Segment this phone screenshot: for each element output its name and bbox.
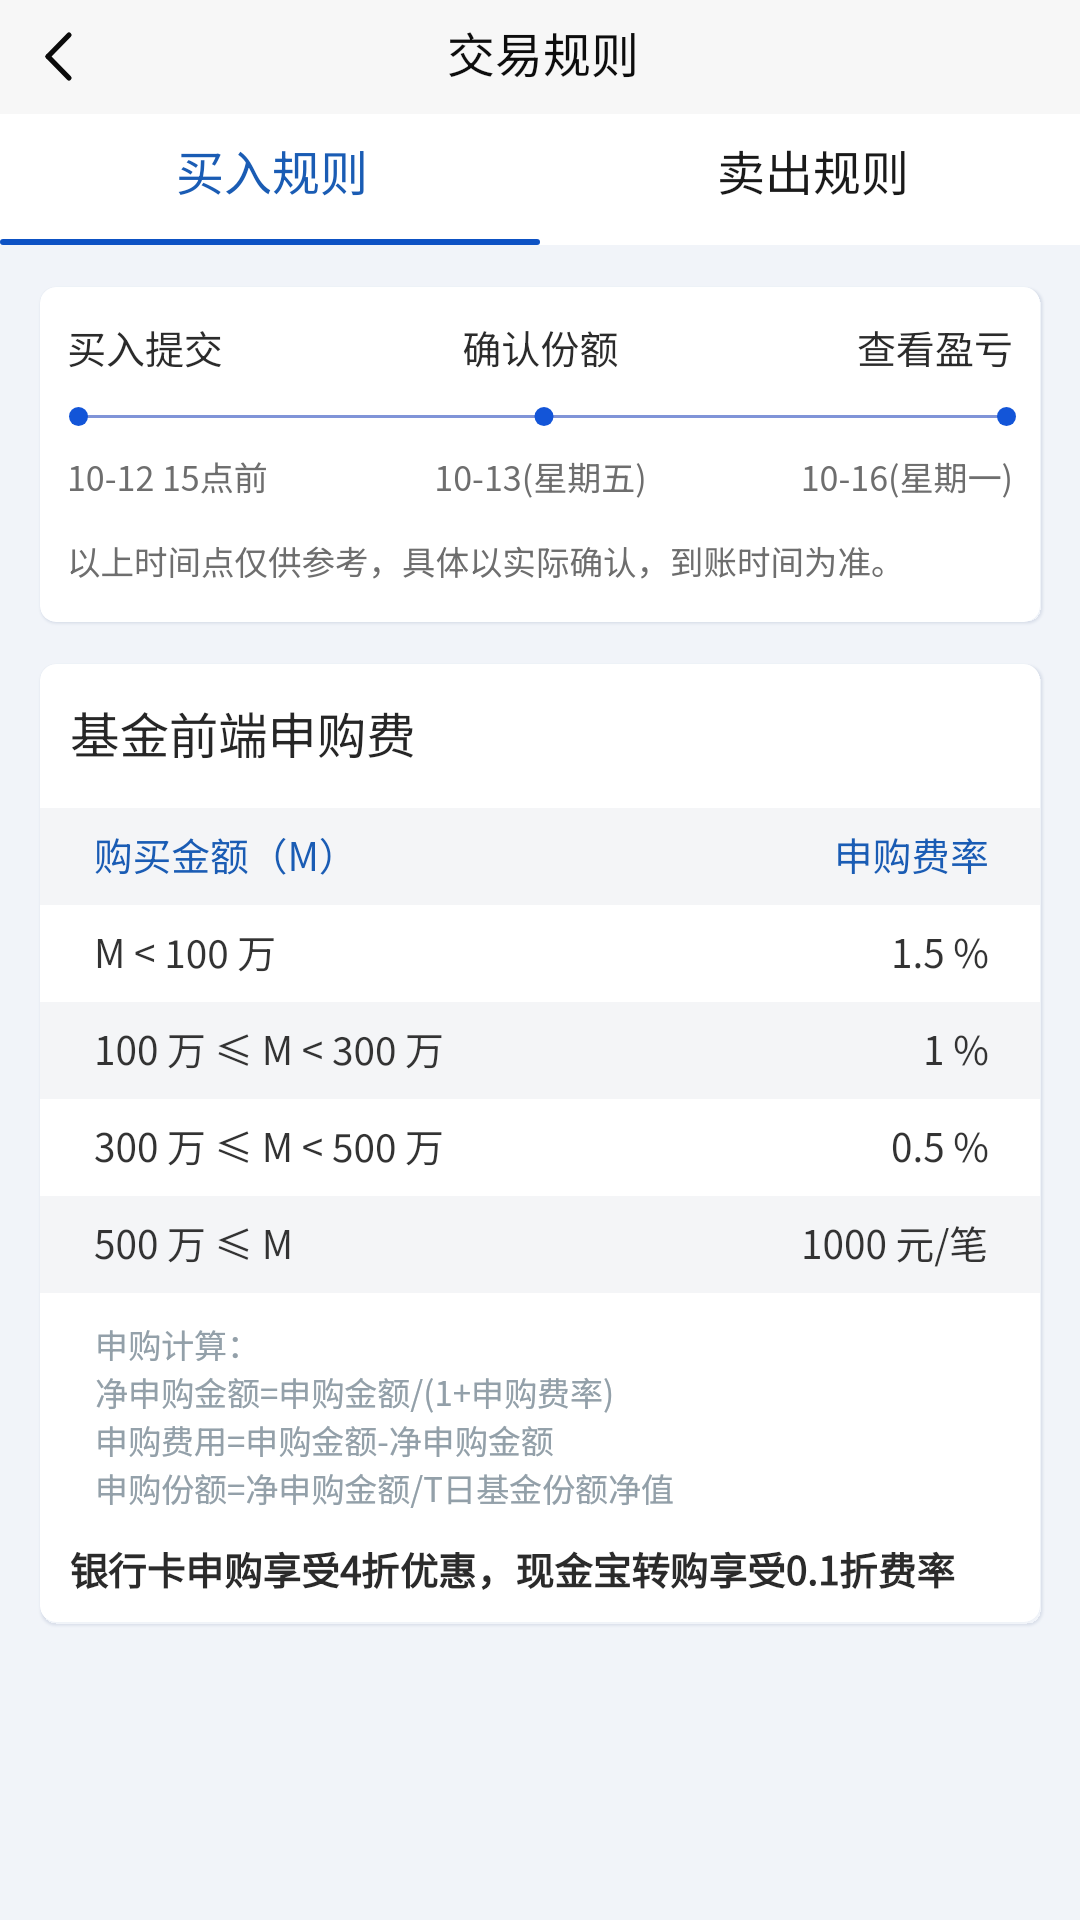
button[interactable]: M < 100 万	[40, 905, 1040, 1002]
staticText: 净申购金额=申购金额/(1+申购费率)	[95, 1368, 615, 1416]
staticText: 买入规则	[176, 135, 369, 205]
staticText: 10-13(星期五)	[383, 452, 698, 501]
staticText: 10-12 15点前	[67, 452, 383, 501]
staticText: 基金前端申购费	[70, 697, 416, 769]
staticText: 申购计算：	[95, 1320, 260, 1368]
staticText: 申购份额=净申购金额/T日基金份额净值	[95, 1464, 675, 1512]
staticText: 查看盈亏	[698, 319, 1013, 375]
staticText: 10-16(星期一)	[698, 452, 1013, 501]
button[interactable]: 300 万 ≤ M < 500 万	[40, 1099, 1040, 1196]
staticText: 300 万 ≤ M < 500 万	[94, 1117, 444, 1173]
staticText: 1 %	[923, 1020, 989, 1076]
staticText: 买入提交	[67, 319, 383, 375]
button[interactable]: 100 万 ≤ M < 300 万	[40, 1002, 1040, 1099]
staticText: 卖出规则	[717, 135, 910, 205]
staticText: 申购费用=申购金额-净申购金额	[95, 1416, 554, 1464]
staticText: 0.5 %	[891, 1117, 989, 1173]
staticText: 100 万 ≤ M < 300 万	[94, 1020, 444, 1076]
staticText: 申购费率	[834, 826, 989, 882]
staticText: 银行卡申购享受4折优惠，现金宝转购享受0.1折费率	[70, 1540, 956, 1596]
button[interactable]: Back	[0, 0, 118, 114]
staticText: 500 万 ≤ M	[94, 1214, 294, 1270]
staticText: 购买金额（M）	[94, 826, 358, 882]
staticText: M < 100 万	[94, 923, 276, 979]
button[interactable]: 500 万 ≤ M	[40, 1196, 1040, 1293]
staticText: 1.5 %	[891, 923, 989, 979]
staticText: 交易规则	[447, 17, 640, 87]
staticText: 确认份额	[383, 319, 698, 375]
staticText: 1000 元/笔	[801, 1214, 989, 1270]
button[interactable]: 卖出规则	[540, 114, 1080, 245]
button[interactable]: 买入规则	[0, 114, 540, 245]
staticText: 以上时间点仅供参考，具体以实际确认，到账时间为准。	[67, 536, 905, 585]
